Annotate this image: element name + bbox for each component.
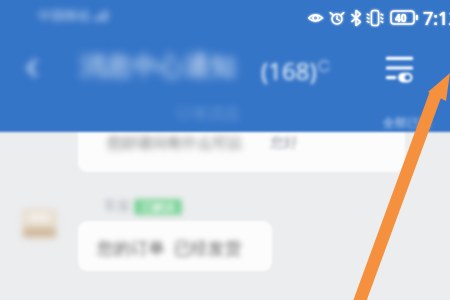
- staticText: 中国移动: [38, 7, 90, 23]
- staticText: 订单消息: [176, 104, 240, 124]
- staticText: (168): [261, 54, 317, 87]
- button[interactable]: 已解决: [134, 199, 182, 215]
- button[interactable]: 您好请问有什么可以: [78, 112, 405, 172]
- staticText: 40: [395, 11, 407, 24]
- staticText: 您好: [270, 134, 298, 152]
- button[interactable]: Back: [8, 44, 56, 92]
- staticText: 全部已读: [383, 115, 431, 130]
- staticText: 40: [395, 11, 407, 24]
- staticText: 客服: [104, 197, 130, 213]
- staticText: 7:12: [423, 6, 450, 31]
- button[interactable]: Avatar: [21, 206, 58, 242]
- staticText: 7:12: [423, 6, 450, 31]
- staticText: 已解决: [142, 200, 175, 214]
- staticText: 消息中心通知: [80, 50, 236, 83]
- staticText: 中国移动: [38, 7, 90, 23]
- staticText: 您的订单 已经发货: [97, 236, 242, 259]
- staticText: 您好请问有什么可以: [107, 134, 242, 153]
- button[interactable]: 您的订单 已经发货: [78, 221, 272, 271]
- button[interactable]: Filter settings: [374, 44, 424, 92]
